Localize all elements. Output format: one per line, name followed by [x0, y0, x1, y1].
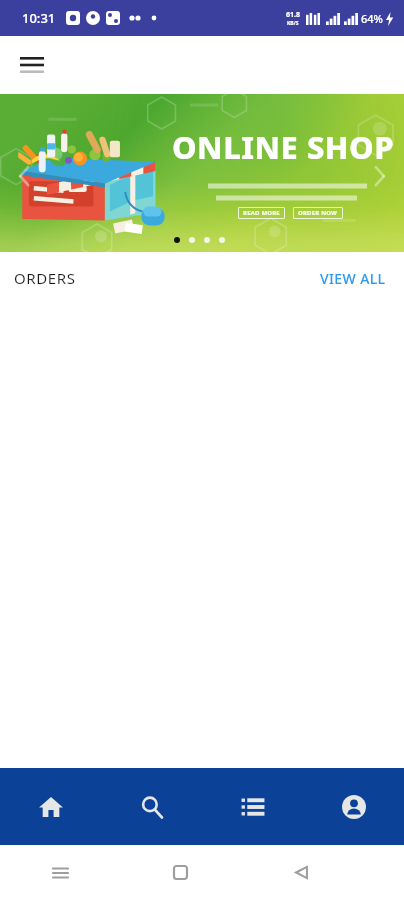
button[interactable] [219, 237, 225, 243]
staticText: 10:31 [22, 9, 56, 27]
button[interactable]: ORDER NOW [293, 207, 343, 219]
staticText: 61.8 [286, 10, 300, 20]
button[interactable]: READ MORE [238, 207, 285, 219]
staticText: ONLINE SHOP [172, 126, 395, 168]
staticText: KB/S [287, 20, 299, 27]
button[interactable] [174, 237, 180, 243]
staticText: READ MORE [243, 209, 280, 217]
button[interactable]: Home [0, 768, 101, 845]
button[interactable]: VIEW ALL [316, 263, 390, 294]
button[interactable]: Back [241, 845, 362, 900]
button[interactable]: Search [101, 768, 202, 845]
button[interactable] [189, 237, 195, 243]
button[interactable]: Open navigation menu [12, 45, 52, 85]
button[interactable]: Orders list [202, 768, 303, 845]
staticText: VIEW ALL [320, 269, 386, 288]
button[interactable] [204, 237, 210, 243]
button[interactable]: Recent apps [0, 845, 120, 900]
button[interactable]: Account [303, 768, 404, 845]
staticText: ORDERS [14, 268, 76, 288]
staticText: ORDER NOW [298, 209, 338, 217]
button[interactable]: Online Shop promotional banner [0, 94, 404, 252]
button[interactable]: Home [120, 845, 241, 900]
staticText: 64% [361, 11, 383, 26]
